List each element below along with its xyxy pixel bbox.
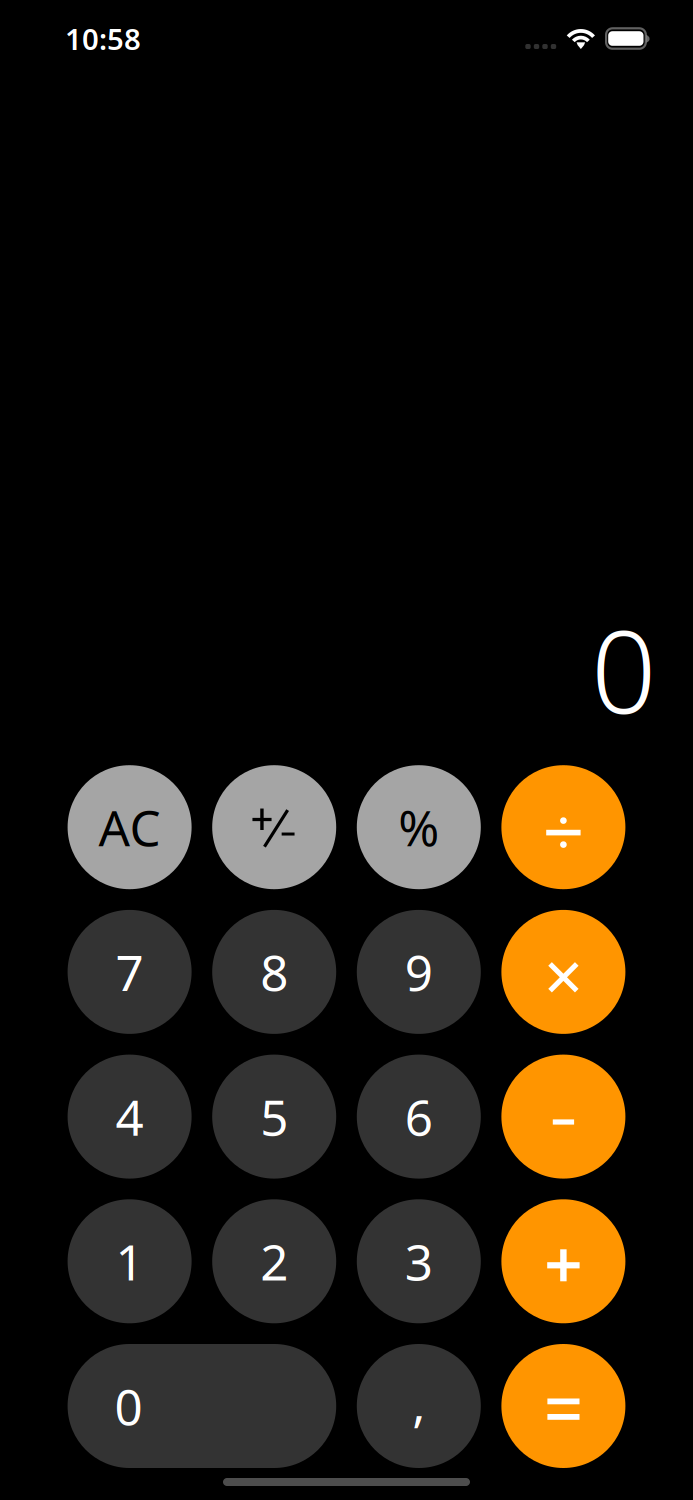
staticText: AC <box>99 794 161 860</box>
staticText: % <box>398 794 439 860</box>
button[interactable]: Divide <box>501 765 625 889</box>
staticText: 1 <box>116 1228 144 1294</box>
button[interactable]: 5 <box>212 1055 336 1179</box>
button[interactable]: Multiply <box>501 910 625 1034</box>
button[interactable]: 0 <box>68 1344 336 1468</box>
button[interactable]: Equals <box>501 1344 625 1468</box>
staticText: 8 <box>260 939 288 1005</box>
staticText: 4 <box>116 1084 144 1149</box>
button[interactable]: 4 <box>68 1055 192 1179</box>
staticText: , <box>412 1370 425 1436</box>
button[interactable]: 9 <box>357 910 481 1034</box>
button[interactable]: , <box>357 1344 481 1468</box>
staticText: 0 <box>115 1373 143 1439</box>
button[interactable]: 8 <box>212 910 336 1034</box>
button[interactable]: % <box>357 765 481 889</box>
button[interactable]: 2 <box>212 1199 336 1323</box>
staticText: 9 <box>405 939 433 1005</box>
staticText: 7 <box>116 939 144 1005</box>
staticText: 10:58 <box>65 19 141 58</box>
staticText: 6 <box>405 1084 433 1149</box>
button[interactable]: Subtract <box>501 1055 625 1179</box>
button[interactable]: Plus minus <box>212 765 336 889</box>
button[interactable]: 1 <box>68 1199 192 1323</box>
button[interactable]: AC <box>68 765 192 889</box>
staticText: 2 <box>260 1228 288 1294</box>
button[interactable]: 6 <box>357 1055 481 1179</box>
button[interactable]: 3 <box>357 1199 481 1323</box>
staticText: 3 <box>405 1228 433 1294</box>
button[interactable]: 7 <box>68 910 192 1034</box>
staticText: 0 <box>591 593 656 745</box>
button[interactable]: Add <box>501 1199 625 1323</box>
staticText: 5 <box>260 1084 288 1149</box>
